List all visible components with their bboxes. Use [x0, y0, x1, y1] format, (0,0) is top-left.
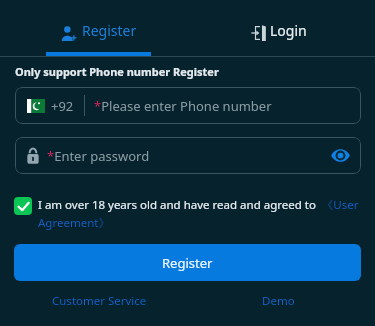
- button[interactable]: +92: [15, 87, 361, 124]
- button[interactable]: Show password: [324, 139, 357, 172]
- staticText: Only support Phone number Register: [15, 64, 219, 79]
- button[interactable]: Customer Service: [52, 293, 147, 309]
- button[interactable]: *Enter password: [15, 137, 361, 174]
- staticText: Register: [162, 254, 213, 272]
- staticText: *Please enter Phone number: [94, 97, 272, 115]
- button[interactable]: Register: [14, 244, 361, 281]
- staticText: *Enter password: [47, 147, 150, 165]
- button[interactable]: Demo: [262, 293, 295, 309]
- button[interactable]: I am over 18 years old and have read and…: [38, 197, 361, 231]
- staticText: Register: [82, 21, 137, 40]
- staticText: Demo: [262, 293, 295, 309]
- button[interactable]: Register: [0, 0, 187, 56]
- staticText: +92: [51, 97, 74, 115]
- staticText: I am over 18 years old and have read and…: [38, 197, 361, 231]
- staticText: Login: [270, 21, 307, 40]
- staticText: Customer Service: [52, 293, 147, 309]
- button[interactable]: Login: [187, 0, 375, 56]
- button[interactable]: I agree checkbox: [14, 197, 32, 215]
